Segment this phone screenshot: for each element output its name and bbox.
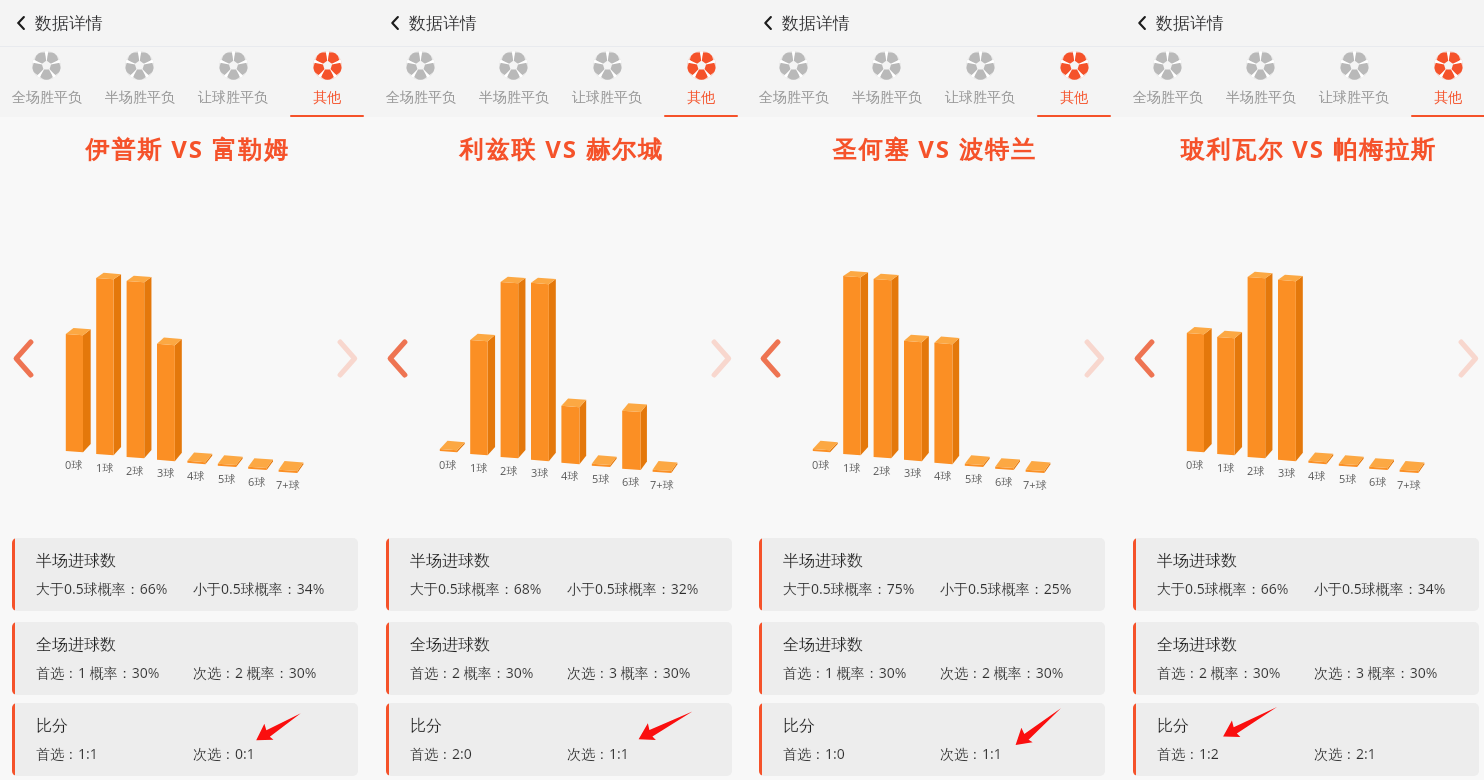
staticText: 让球胜平负	[572, 89, 642, 107]
button[interactable]: 比分	[759, 703, 1105, 776]
staticText: 2球	[873, 463, 891, 478]
staticText: 首选：1 概率：30%	[36, 663, 160, 682]
staticText: 3球	[157, 465, 175, 480]
staticText: 1球	[1217, 460, 1235, 475]
button[interactable]: Back	[13, 0, 103, 46]
button[interactable]: 让球胜平负	[560, 47, 654, 117]
staticText: 5球	[965, 471, 983, 486]
staticText: 数据详情	[782, 13, 850, 34]
button[interactable]: 全场胜平负	[0, 47, 93, 117]
button[interactable]: 半场胜平负	[1214, 47, 1307, 117]
button[interactable]: 全场进球数	[1133, 622, 1479, 695]
button[interactable]: Next match	[705, 334, 741, 383]
button[interactable]: Next match	[1078, 334, 1114, 383]
staticText: 次选：2:1	[1314, 744, 1376, 763]
staticText: 大于0.5球概率：66%	[1157, 579, 1289, 598]
button[interactable]: 比分	[386, 703, 732, 776]
staticText: 半场胜平负	[479, 89, 549, 107]
staticText: 1球	[96, 460, 114, 475]
staticText: 次选：3 概率：30%	[1314, 663, 1438, 682]
staticText: 0球	[812, 457, 830, 472]
button[interactable]: 半场进球数	[386, 538, 732, 611]
staticText: 数据详情	[35, 13, 103, 34]
staticText: 6球	[622, 474, 640, 489]
staticText: 0球	[1186, 457, 1204, 472]
staticText: 4球	[561, 468, 579, 483]
button[interactable]: 其他	[654, 47, 748, 117]
button[interactable]: 其他	[1027, 47, 1121, 117]
button[interactable]: 半场胜平负	[840, 47, 933, 117]
staticText: 6球	[995, 474, 1013, 489]
button[interactable]: 比分	[12, 703, 358, 776]
staticText: 半场胜平负	[1226, 89, 1296, 107]
staticText: 4球	[934, 468, 952, 483]
staticText: 小于0.5球概率：32%	[567, 579, 699, 598]
button[interactable]: Previous match	[1127, 334, 1163, 383]
button[interactable]: 全场胜平负	[374, 47, 467, 117]
button[interactable]: 全场进球数	[386, 622, 732, 695]
staticText: 其他	[1060, 89, 1088, 107]
staticText: 小于0.5球概率：34%	[193, 579, 325, 598]
staticText: 比分	[783, 716, 815, 736]
staticText: 数据详情	[1156, 13, 1224, 34]
button[interactable]: 半场进球数	[12, 538, 358, 611]
button[interactable]: Back	[387, 0, 477, 46]
button[interactable]: 全场进球数	[759, 622, 1105, 695]
staticText: 伊普斯 VS 富勒姆	[85, 132, 290, 165]
staticText: 小于0.5球概率：25%	[940, 579, 1072, 598]
staticText: 次选：1:1	[567, 744, 629, 763]
staticText: 2球	[1247, 463, 1265, 478]
staticText: 比分	[1157, 716, 1189, 736]
staticText: 半场进球数	[1157, 551, 1237, 571]
staticText: 7+球	[1023, 477, 1047, 492]
staticText: 首选：1:2	[1157, 744, 1219, 763]
staticText: 2球	[500, 463, 518, 478]
staticText: 半场胜平负	[105, 89, 175, 107]
staticText: 首选：2 概率：30%	[410, 663, 534, 682]
staticText: 3球	[904, 465, 922, 480]
button[interactable]: 让球胜平负	[186, 47, 280, 117]
button[interactable]: Previous match	[753, 334, 789, 383]
button[interactable]: Back	[760, 0, 850, 46]
button[interactable]: 全场胜平负	[1121, 47, 1214, 117]
staticText: 数据详情	[409, 13, 477, 34]
button[interactable]: 让球胜平负	[1307, 47, 1401, 117]
button[interactable]: Previous match	[6, 334, 42, 383]
staticText: 比分	[36, 716, 68, 736]
staticText: 0球	[439, 457, 457, 472]
button[interactable]: 半场胜平负	[467, 47, 560, 117]
staticText: 次选：2 概率：30%	[193, 663, 317, 682]
button[interactable]: 半场进球数	[1133, 538, 1479, 611]
staticText: 5球	[592, 471, 610, 486]
staticText: 利兹联 VS 赫尔城	[459, 132, 664, 165]
staticText: 全场进球数	[1157, 635, 1237, 655]
button[interactable]: Next match	[1452, 334, 1484, 383]
staticText: 其他	[1434, 89, 1462, 107]
button[interactable]: 其他	[1401, 47, 1484, 117]
button[interactable]: Back	[1134, 0, 1224, 46]
button[interactable]: 让球胜平负	[933, 47, 1027, 117]
button[interactable]: 半场进球数	[759, 538, 1105, 611]
staticText: 全场进球数	[36, 635, 116, 655]
staticText: 5球	[1339, 471, 1357, 486]
button[interactable]: 全场胜平负	[747, 47, 840, 117]
staticText: 0球	[65, 457, 83, 472]
staticText: 1球	[843, 460, 861, 475]
button[interactable]: 比分	[1133, 703, 1479, 776]
button[interactable]: Previous match	[380, 334, 416, 383]
staticText: 圣何塞 VS 波特兰	[832, 132, 1037, 165]
button[interactable]: 其他	[280, 47, 374, 117]
staticText: 首选：1 概率：30%	[783, 663, 907, 682]
staticText: 半场胜平负	[852, 89, 922, 107]
staticText: 全场进球数	[783, 635, 863, 655]
staticText: 7+球	[1397, 477, 1421, 492]
staticText: 半场进球数	[36, 551, 116, 571]
staticText: 半场进球数	[783, 551, 863, 571]
staticText: 小于0.5球概率：34%	[1314, 579, 1446, 598]
staticText: 7+球	[650, 477, 674, 492]
staticText: 4球	[1308, 468, 1326, 483]
button[interactable]: 半场胜平负	[93, 47, 186, 117]
staticText: 半场进球数	[410, 551, 490, 571]
button[interactable]: Next match	[331, 334, 367, 383]
button[interactable]: 全场进球数	[12, 622, 358, 695]
